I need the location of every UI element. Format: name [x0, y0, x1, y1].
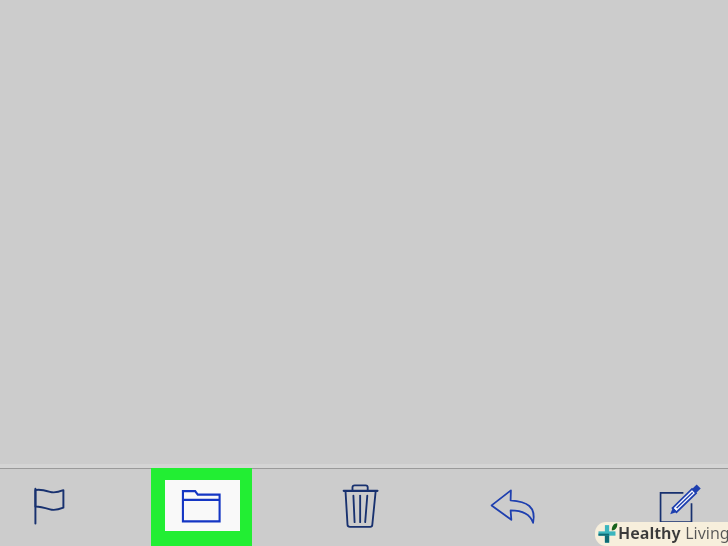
button[interactable]: Reply [489, 488, 537, 526]
button[interactable]: Delete [343, 484, 378, 528]
staticText: Healthy [618, 522, 681, 544]
staticText: Living [681, 522, 728, 544]
button[interactable]: Move to folder [151, 468, 252, 546]
button[interactable]: Flag [33, 486, 67, 526]
button[interactable]: Compose [659, 485, 700, 524]
